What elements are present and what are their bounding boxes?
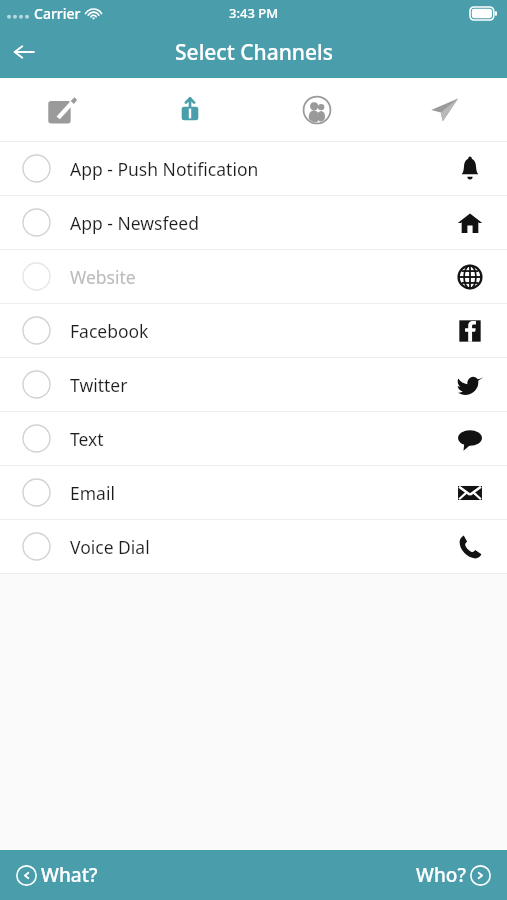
button[interactable]: Voice Dial xyxy=(0,520,507,574)
staticText: Who? xyxy=(416,862,466,888)
staticText: Text xyxy=(70,427,104,451)
staticText: Website xyxy=(70,265,136,289)
staticText: Twitter xyxy=(70,373,128,397)
staticText: 3:43 PM xyxy=(229,4,279,22)
button[interactable]: What? xyxy=(0,850,112,900)
button[interactable]: Text xyxy=(0,412,507,466)
staticText: What? xyxy=(41,862,98,888)
button[interactable]: Twitter xyxy=(0,358,507,412)
button[interactable]: Back xyxy=(0,28,48,76)
button[interactable]: App - Push Notification xyxy=(0,142,507,196)
staticText: Facebook xyxy=(70,319,149,343)
staticText: Voice Dial xyxy=(70,535,150,559)
button[interactable]: Website xyxy=(0,250,507,304)
button[interactable]: App - Newsfeed xyxy=(0,196,507,250)
staticText: Email xyxy=(70,481,115,505)
staticText: Select Channels xyxy=(175,38,333,67)
staticText: App - Newsfeed xyxy=(70,211,199,235)
button[interactable]: Who? xyxy=(402,850,507,900)
button[interactable]: Email xyxy=(0,466,507,520)
button[interactable]: Share xyxy=(126,78,253,141)
staticText: App - Push Notification xyxy=(70,157,259,181)
button[interactable]: Send xyxy=(380,78,507,141)
button[interactable]: Audience xyxy=(253,78,380,141)
button[interactable]: Facebook xyxy=(0,304,507,358)
staticText: Carrier xyxy=(34,4,81,23)
button[interactable]: Compose xyxy=(0,78,126,141)
